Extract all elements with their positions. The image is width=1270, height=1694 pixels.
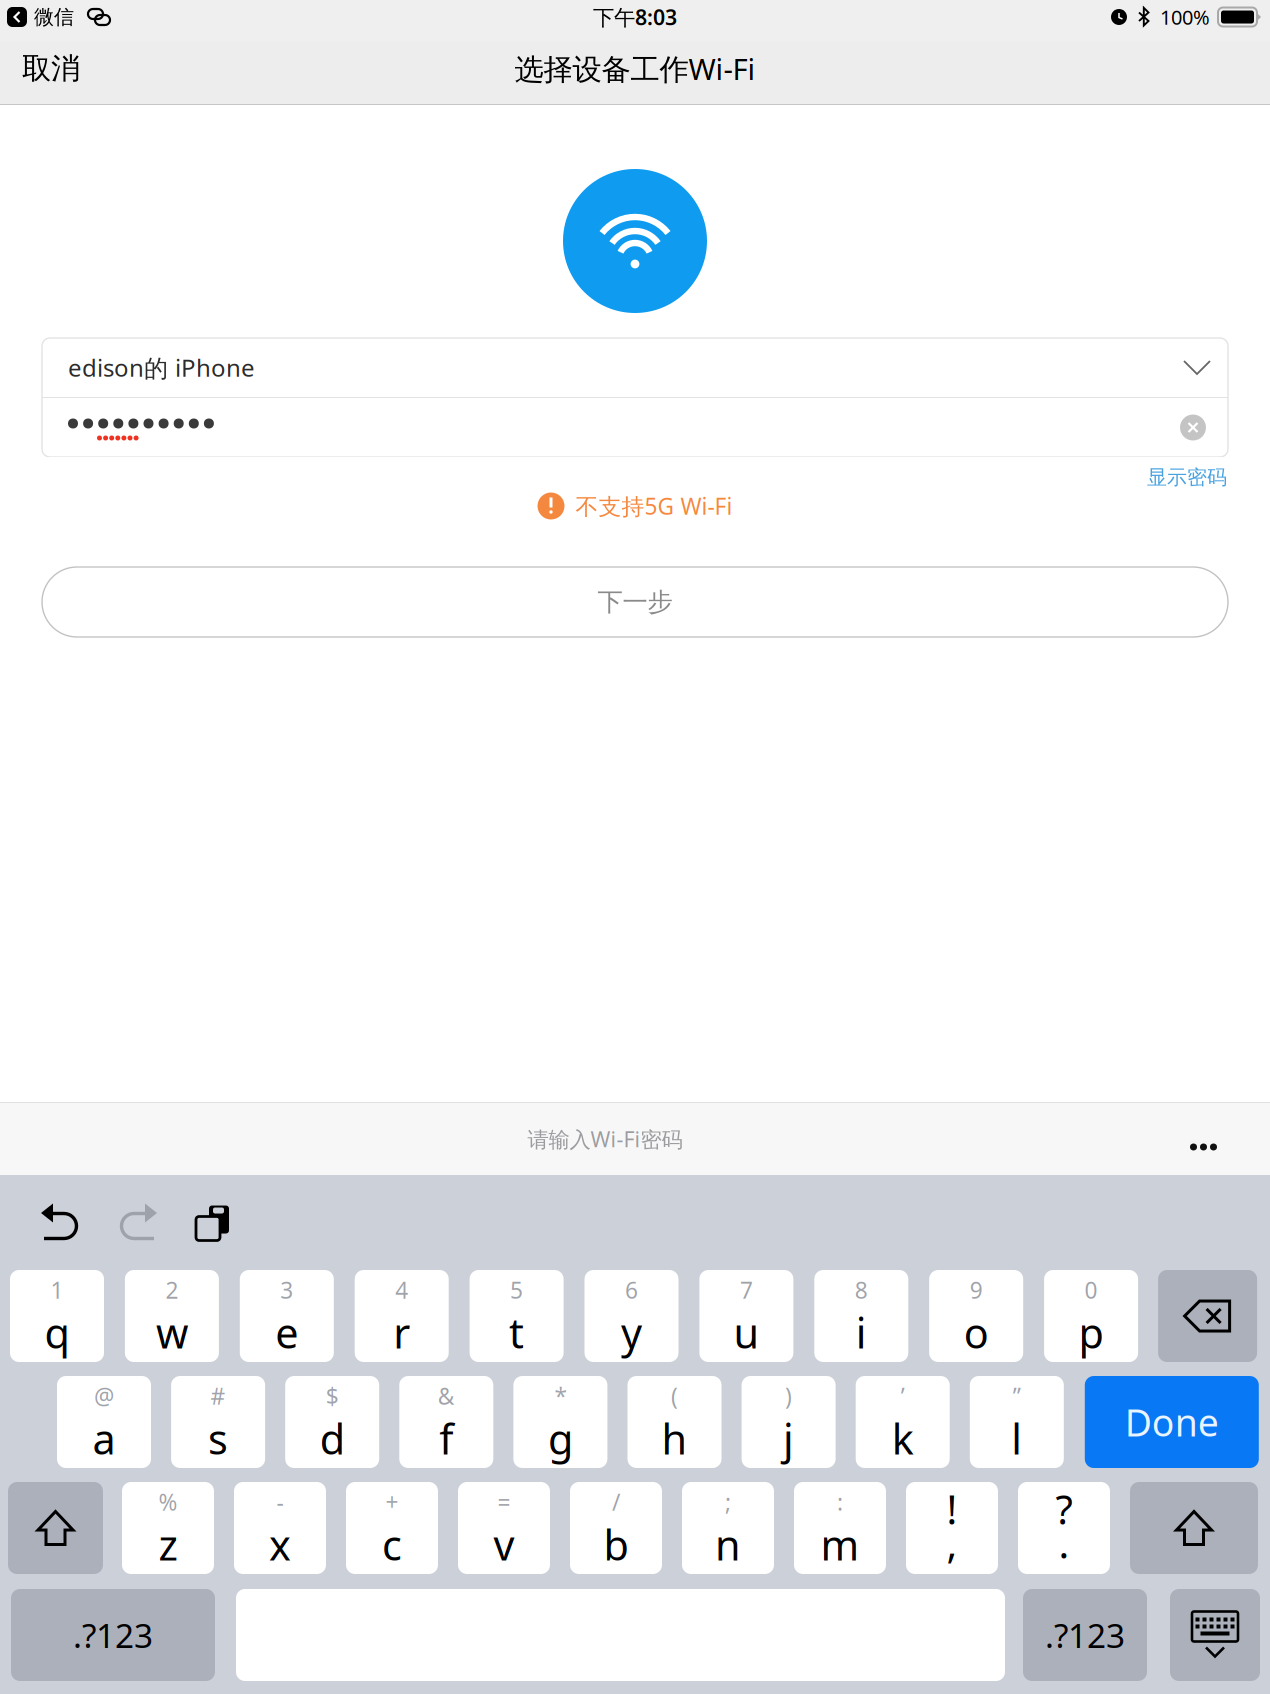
button[interactable]: Undo: [27, 1176, 91, 1268]
staticText: 下午8:03: [593, 3, 677, 31]
staticText: .?123: [1045, 1613, 1125, 1657]
button[interactable]: 显示密码: [1147, 457, 1270, 490]
staticText: j: [783, 1411, 794, 1466]
button[interactable]: i: [814, 1270, 908, 1362]
staticText: ): [785, 1381, 792, 1411]
staticText: r: [393, 1305, 410, 1360]
staticText: #: [211, 1381, 226, 1411]
staticText: /: [612, 1487, 620, 1517]
staticText: 2: [165, 1275, 178, 1305]
button[interactable]: p: [1044, 1270, 1138, 1362]
button[interactable]: k: [856, 1376, 950, 1468]
button[interactable]: Clear text: [1180, 414, 1206, 440]
button[interactable]: z: [122, 1482, 214, 1574]
staticText: d: [320, 1411, 345, 1466]
button[interactable]: edison的 iPhone: [42, 338, 1228, 397]
staticText: ’: [901, 1381, 905, 1411]
staticText: p: [1079, 1305, 1104, 1360]
button[interactable]: 下一步: [0, 567, 1270, 637]
button[interactable]: Paste: [179, 1176, 237, 1268]
button[interactable]: Numbers: [11, 1589, 215, 1681]
staticText: *: [554, 1381, 566, 1411]
staticText: 微信: [34, 5, 74, 29]
staticText: +: [385, 1487, 398, 1517]
button[interactable]: question period: [1018, 1482, 1110, 1574]
staticText: u: [733, 1305, 759, 1360]
staticText: &: [438, 1381, 455, 1411]
button[interactable]: c: [346, 1482, 438, 1574]
button[interactable]: j: [742, 1376, 836, 1468]
staticText: 下一步: [597, 586, 672, 617]
button[interactable]: Redo: [107, 1176, 171, 1268]
button[interactable]: x: [234, 1482, 326, 1574]
staticText: 8: [855, 1275, 868, 1305]
staticText: i: [856, 1305, 867, 1360]
button[interactable]: m: [794, 1482, 886, 1574]
staticText: n: [715, 1517, 741, 1572]
staticText: h: [661, 1411, 687, 1466]
staticText: (: [671, 1381, 678, 1411]
button[interactable]: d: [285, 1376, 379, 1468]
staticText: 0: [1085, 1275, 1098, 1305]
staticText: Done: [1125, 1397, 1219, 1447]
button[interactable]: b: [570, 1482, 662, 1574]
staticText: @: [94, 1381, 114, 1411]
staticText: v: [493, 1517, 514, 1572]
staticText: 6: [625, 1275, 638, 1305]
staticText: t: [509, 1305, 524, 1360]
staticText: .?123: [73, 1613, 153, 1657]
button[interactable]: 取消: [0, 40, 80, 96]
staticText: 显示密码: [1147, 465, 1227, 490]
staticText: 请输入Wi-Fi密码: [527, 1125, 682, 1153]
staticText: 9: [970, 1275, 983, 1305]
button[interactable]: l: [970, 1376, 1064, 1468]
staticText: %: [158, 1487, 177, 1517]
staticText: 5: [510, 1275, 523, 1305]
staticText: f: [439, 1411, 453, 1466]
button[interactable]: 微信: [0, 0, 110, 38]
staticText: ,: [946, 1516, 957, 1569]
staticText: ?: [1055, 1482, 1072, 1535]
staticText: c: [382, 1517, 402, 1572]
staticText: 不支持5G Wi-Fi: [575, 491, 732, 521]
button[interactable]: o: [929, 1270, 1023, 1362]
button[interactable]: a: [57, 1376, 151, 1468]
staticText: a: [92, 1411, 115, 1466]
button[interactable]: r: [355, 1270, 449, 1362]
staticText: -: [276, 1487, 283, 1517]
button[interactable]: Done: [1085, 1376, 1259, 1468]
staticText: 4: [395, 1275, 408, 1305]
button[interactable]: n: [682, 1482, 774, 1574]
staticText: l: [1011, 1411, 1022, 1466]
staticText: g: [548, 1411, 573, 1466]
button[interactable]: s: [171, 1376, 265, 1468]
staticText: ”: [1013, 1381, 1021, 1411]
button[interactable]: Numbers: [1023, 1589, 1147, 1681]
button[interactable]: e: [240, 1270, 334, 1362]
button[interactable]: y: [584, 1270, 678, 1362]
staticText: o: [964, 1305, 989, 1360]
button[interactable]: g: [513, 1376, 607, 1468]
staticText: y: [621, 1305, 642, 1360]
button[interactable]: Shift: [8, 1482, 103, 1574]
button[interactable]: q: [10, 1270, 104, 1362]
staticText: x: [269, 1517, 291, 1572]
button[interactable]: v: [458, 1482, 550, 1574]
staticText: z: [158, 1517, 177, 1572]
button[interactable]: w: [125, 1270, 219, 1362]
staticText: edison的 iPhone: [68, 351, 255, 383]
button[interactable]: exclamation comma: [906, 1482, 998, 1574]
button[interactable]: Hide keyboard: [1170, 1589, 1260, 1681]
staticText: :: [837, 1487, 843, 1517]
button[interactable]: u: [699, 1270, 793, 1362]
button[interactable]: Backspace: [1158, 1270, 1257, 1362]
button[interactable]: More options: [1165, 1113, 1270, 1164]
staticText: b: [603, 1517, 628, 1572]
button[interactable]: Shift: [1130, 1482, 1258, 1574]
button[interactable]: h: [627, 1376, 721, 1468]
button[interactable]: f: [399, 1376, 493, 1468]
staticText: m: [820, 1517, 859, 1572]
button[interactable]: t: [470, 1270, 564, 1362]
staticText: $: [326, 1381, 339, 1411]
